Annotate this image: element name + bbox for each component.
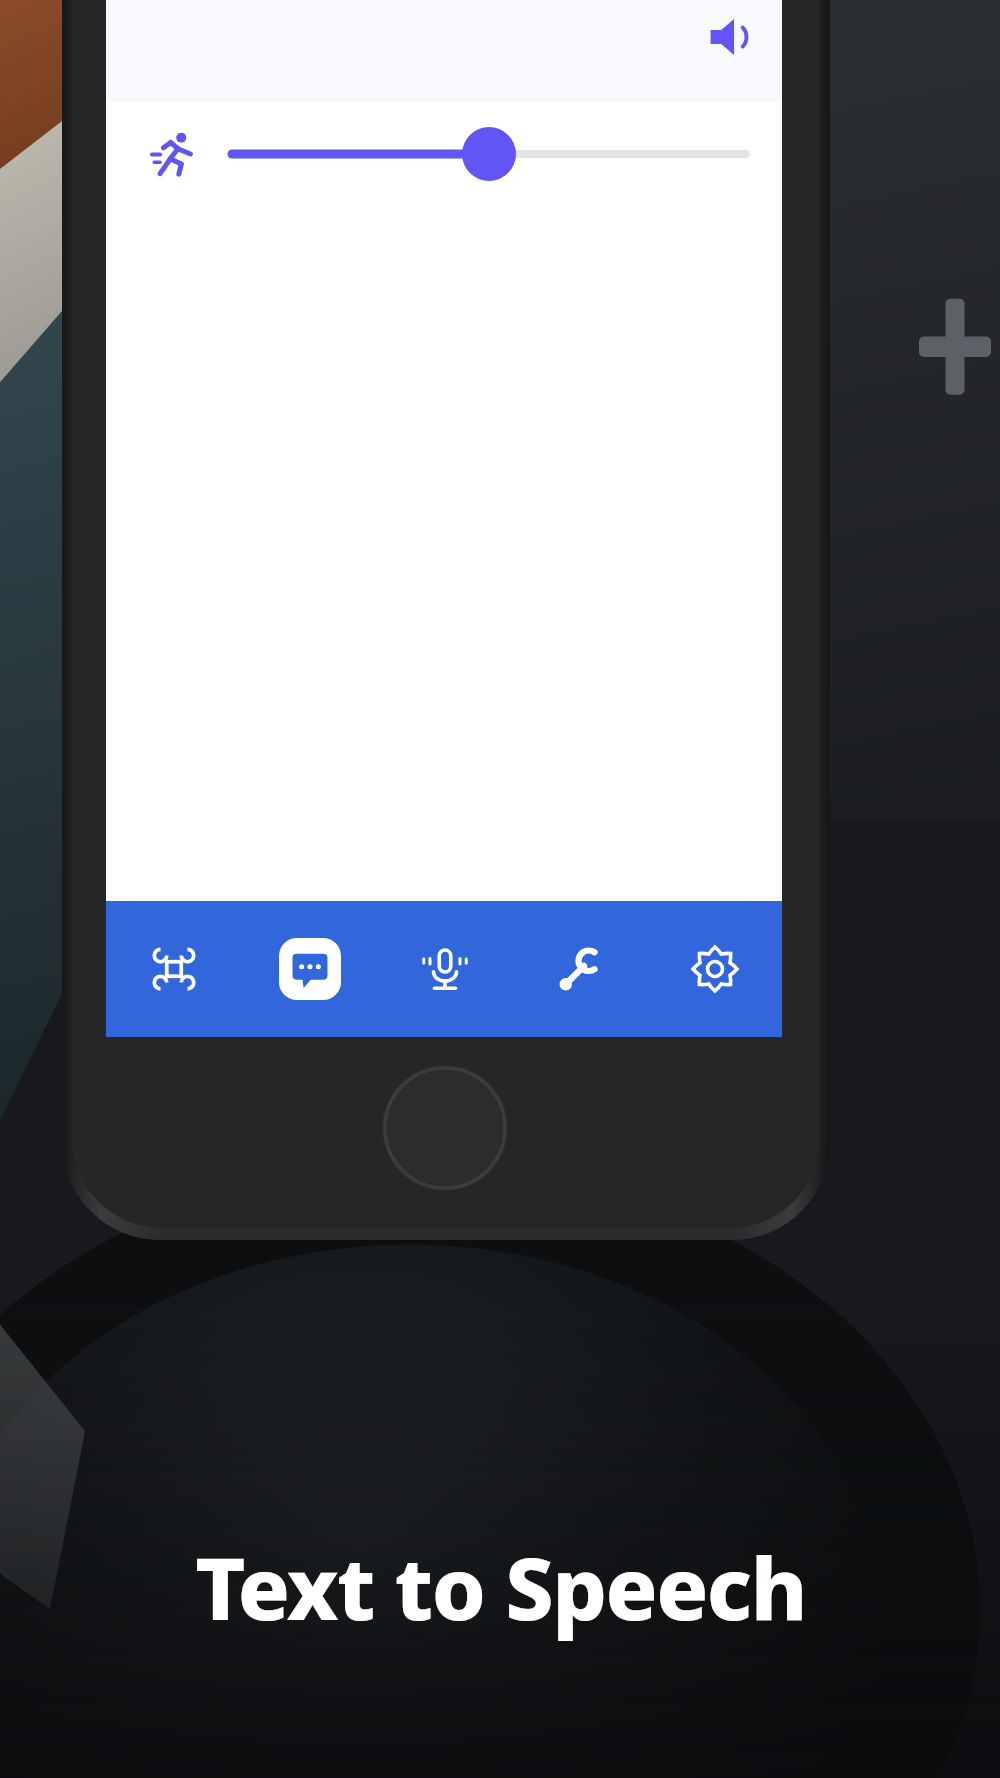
button[interactable]: Volume bbox=[696, 4, 762, 70]
button[interactable] bbox=[232, 125, 746, 183]
button[interactable]: Messages bbox=[242, 901, 377, 1037]
button[interactable]: Voice input bbox=[377, 901, 512, 1037]
button[interactable]: Shortcuts bbox=[106, 901, 242, 1037]
staticText: Text to Speech bbox=[195, 1528, 806, 1645]
button[interactable]: Tools bbox=[512, 901, 647, 1037]
button[interactable]: Home bbox=[382, 1065, 508, 1191]
button[interactable]: Settings bbox=[647, 901, 782, 1037]
button[interactable]: Speech rate bbox=[144, 123, 206, 185]
